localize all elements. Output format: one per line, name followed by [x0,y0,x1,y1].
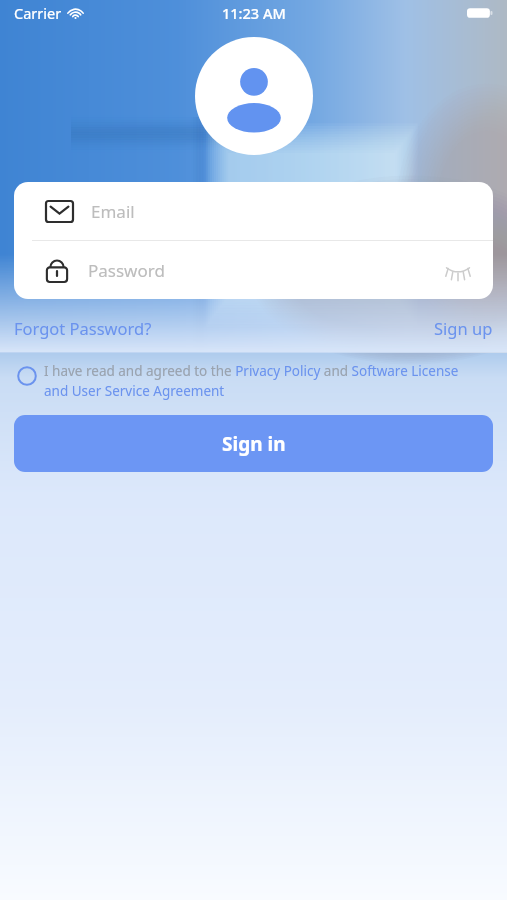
button[interactable]: Show password [443,255,473,285]
button[interactable]: Sign in [14,415,493,472]
button[interactable]: Sign up [434,317,493,339]
staticText: Sign in [222,431,286,457]
staticText: Carrier [14,3,62,23]
staticText: I have read and agreed to the Privacy Po… [44,362,467,400]
button[interactable]: Password [14,241,493,299]
staticText: 11:23 AM [222,3,286,23]
button[interactable]: Email [14,182,493,240]
button[interactable]: Forgot Password? [14,317,152,339]
staticText: Sign up [434,317,493,339]
staticText: Email [91,200,135,223]
button[interactable]: I have read and agreed to the Privacy Po… [0,362,507,400]
staticText: Password [88,259,165,282]
staticText: Forgot Password? [14,317,152,339]
